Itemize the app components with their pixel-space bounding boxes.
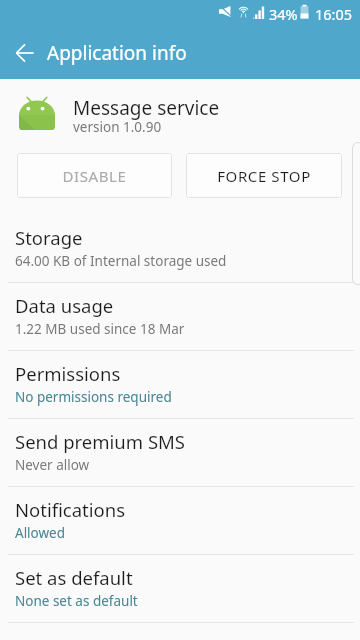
staticText: Send premium SMS bbox=[15, 429, 185, 454]
staticText: 16:05 bbox=[315, 4, 353, 24]
button[interactable]: FORCE STOP bbox=[186, 153, 342, 198]
staticText: None set as default bbox=[15, 592, 138, 610]
staticText: Set as default bbox=[15, 565, 133, 590]
button[interactable]: Set as default bbox=[0, 555, 360, 623]
button[interactable]: Permissions bbox=[0, 351, 360, 419]
staticText: 64.00 KB of Internal storage used bbox=[15, 252, 227, 270]
button[interactable]: Send premium SMS bbox=[0, 419, 360, 487]
button[interactable]: Navigate up bbox=[4, 32, 45, 73]
staticText: Message service bbox=[73, 95, 220, 121]
staticText: Storage bbox=[15, 225, 83, 250]
button[interactable]: Notifications bbox=[0, 487, 360, 555]
button[interactable]: Data usage bbox=[0, 283, 360, 351]
staticText: FORCE STOP bbox=[217, 166, 311, 186]
staticText: version 1.0.90 bbox=[73, 118, 162, 136]
staticText: Data usage bbox=[15, 293, 114, 318]
staticText: No permissions required bbox=[15, 388, 172, 406]
staticText: 1.22 MB used since 18 Mar bbox=[15, 320, 185, 338]
button[interactable]: DISABLE bbox=[17, 153, 172, 198]
staticText: Permissions bbox=[15, 361, 121, 386]
button[interactable]: Storage bbox=[0, 215, 360, 283]
staticText: Notifications bbox=[15, 497, 126, 522]
staticText: 34% bbox=[269, 4, 298, 24]
staticText: Never allow bbox=[15, 456, 90, 474]
staticText: Allowed bbox=[15, 524, 66, 542]
staticText: DISABLE bbox=[62, 166, 127, 186]
staticText: Application info bbox=[47, 40, 187, 66]
